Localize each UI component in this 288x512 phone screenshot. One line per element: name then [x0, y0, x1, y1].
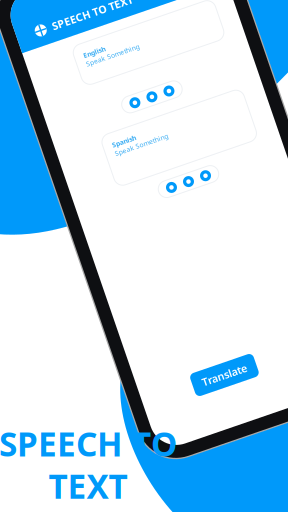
staticText: SPEECH TO	[0, 421, 177, 466]
button[interactable]: Translate	[128, 366, 195, 390]
staticText: TEXT	[48, 464, 127, 508]
staticText: Speak Something	[130, 129, 186, 138]
staticText: Spanish	[130, 120, 155, 129]
